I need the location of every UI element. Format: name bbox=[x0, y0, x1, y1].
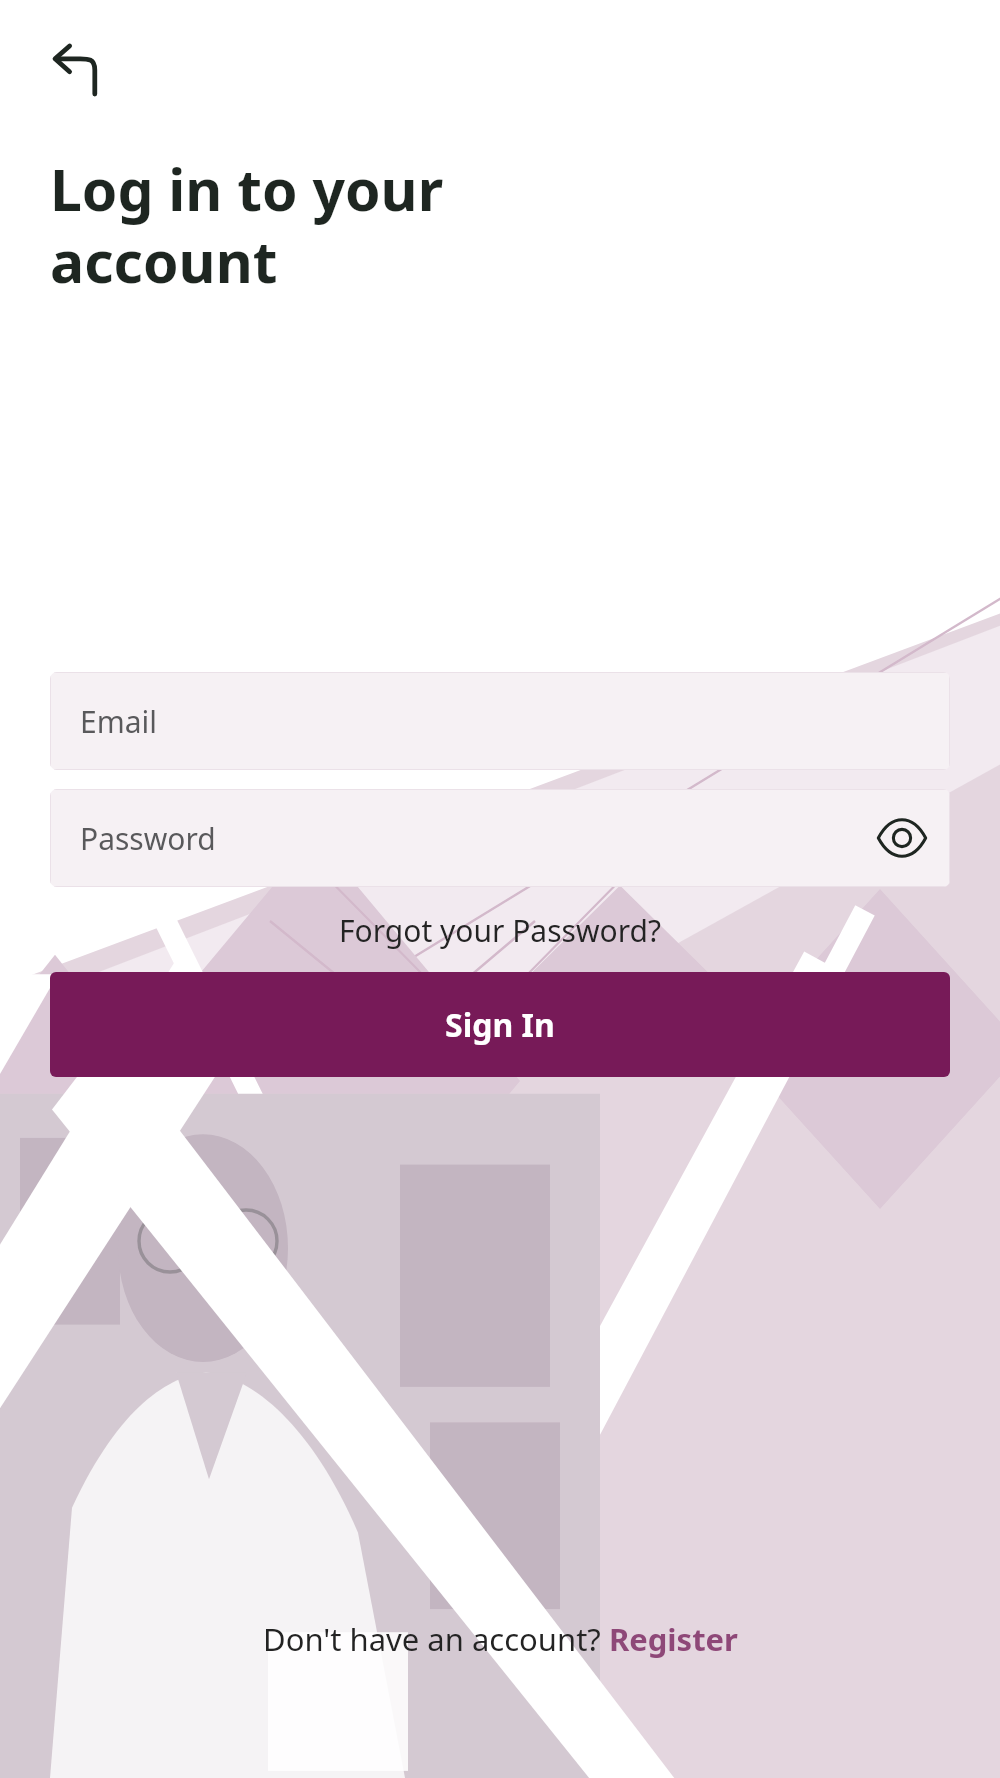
staticText: Email bbox=[80, 701, 158, 742]
staticText: Log in to your account bbox=[50, 150, 444, 299]
staticText: Don't have an account? Register bbox=[263, 1618, 738, 1660]
staticText: Forgot your Password? bbox=[339, 910, 661, 951]
button[interactable]: Don't have an account? Register bbox=[0, 1618, 1000, 1660]
button[interactable]: Back bbox=[50, 42, 106, 98]
button[interactable]: Email bbox=[50, 672, 950, 770]
button[interactable]: Sign In bbox=[50, 972, 950, 1077]
button[interactable]: Password bbox=[50, 789, 950, 887]
button[interactable]: Show password bbox=[870, 806, 934, 870]
staticText: Sign In bbox=[445, 1003, 555, 1047]
staticText: Password bbox=[80, 818, 216, 859]
button[interactable]: Forgot your Password? bbox=[50, 910, 950, 951]
